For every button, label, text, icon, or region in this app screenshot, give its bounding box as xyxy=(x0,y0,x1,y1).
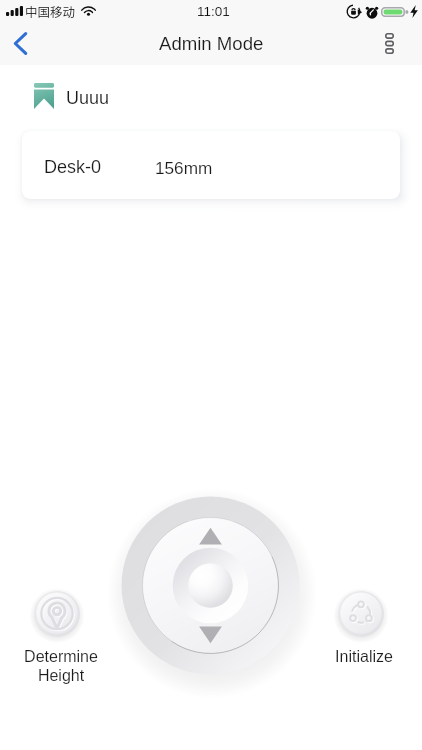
staticText: Uuuu xyxy=(66,88,110,108)
staticText: 中国移动 xyxy=(25,2,76,20)
button[interactable]: Desk-0 xyxy=(22,131,400,199)
staticText: 11:01 xyxy=(197,4,230,19)
staticText: 156mm xyxy=(155,158,213,177)
staticText: Admin Mode xyxy=(159,33,264,54)
button[interactable]: Menu xyxy=(367,22,422,65)
button[interactable]: Initialize xyxy=(333,586,389,642)
button[interactable]: Back xyxy=(0,22,42,65)
staticText: Determine Height xyxy=(1,648,121,685)
staticText: Initialize xyxy=(304,648,422,666)
button[interactable]: Determine Height xyxy=(29,586,85,642)
staticText: Desk-0 xyxy=(44,157,102,177)
button[interactable]: Height control xyxy=(110,485,311,686)
